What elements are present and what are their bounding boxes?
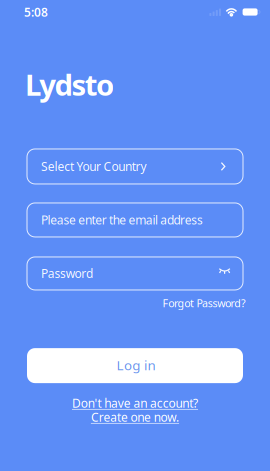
button[interactable]: Please enter the email address — [27, 203, 243, 237]
button[interactable]: Select Your Country — [27, 149, 243, 184]
button[interactable]: Don't have an account? — [72, 397, 198, 409]
staticText: Password — [41, 265, 93, 281]
button[interactable]: Forgot Password? — [0, 290, 270, 310]
button[interactable]: Log in — [27, 348, 243, 383]
staticText: Don't have an account? — [72, 395, 198, 411]
staticText: Create one now. — [91, 409, 179, 425]
staticText: Log in — [116, 356, 155, 374]
staticText: Please enter the email address — [41, 212, 203, 228]
staticText: Lydsto — [25, 65, 114, 104]
button[interactable]: Create one now. — [91, 411, 179, 423]
staticText: 5:08 — [24, 4, 48, 20]
staticText: Forgot Password? — [162, 296, 246, 310]
staticText: Select Your Country — [41, 158, 146, 174]
button[interactable]: Password — [27, 257, 243, 290]
